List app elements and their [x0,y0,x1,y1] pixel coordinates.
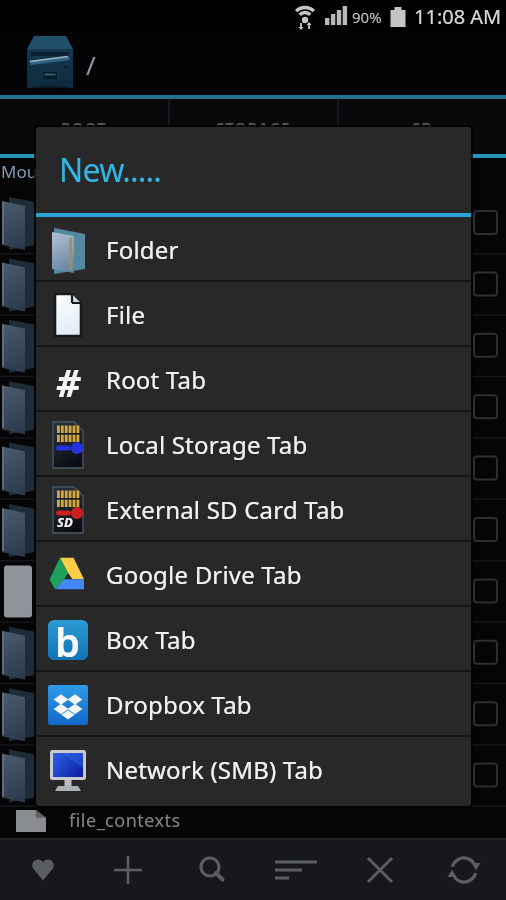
staticText: b [55,614,81,662]
button[interactable]: SD [36,477,471,542]
button[interactable]: ROOT [0,99,168,154]
button[interactable]: Network (SMB) Tab [36,737,471,802]
staticText: Root Tab [106,363,207,396]
staticText: 11:08 AM [414,3,502,30]
button[interactable]: b [36,607,471,672]
staticText: File [106,298,146,331]
button[interactable] [85,840,170,900]
staticText: External SD Card Tab [106,493,345,526]
button[interactable] [170,840,254,900]
button[interactable]: Google Drive Tab [36,542,471,607]
button[interactable]: SD [339,99,506,154]
staticText: Folder [106,233,179,266]
staticText: Network (SMB) Tab [106,753,324,786]
staticText: Box Tab [106,623,196,656]
staticText: # [56,356,81,404]
button[interactable]: Dropbox Tab [36,672,471,737]
button[interactable]: STORAGE [170,99,337,154]
button[interactable]: Local Storage Tab [36,412,471,477]
button[interactable] [0,840,85,900]
button[interactable]: Folder [36,217,471,282]
button[interactable]: File [36,282,471,347]
button[interactable] [254,840,338,900]
staticText: SD [57,513,73,531]
button[interactable] [338,840,422,900]
staticText: Dropbox Tab [106,688,252,721]
staticText: Mou [1,160,38,183]
staticText: STORAGE [216,117,291,137]
staticText: file_contexts [69,808,181,833]
staticText: ROOT [61,117,107,137]
button[interactable]: # [36,347,471,412]
staticText: Google Drive Tab [106,558,302,591]
staticText: 90% [352,7,382,27]
button[interactable] [26,36,74,92]
staticText: Local Storage Tab [106,428,308,461]
staticText: / [86,47,96,82]
staticText: SD [412,117,434,137]
staticText: New..... [59,148,162,192]
button[interactable] [422,840,506,900]
